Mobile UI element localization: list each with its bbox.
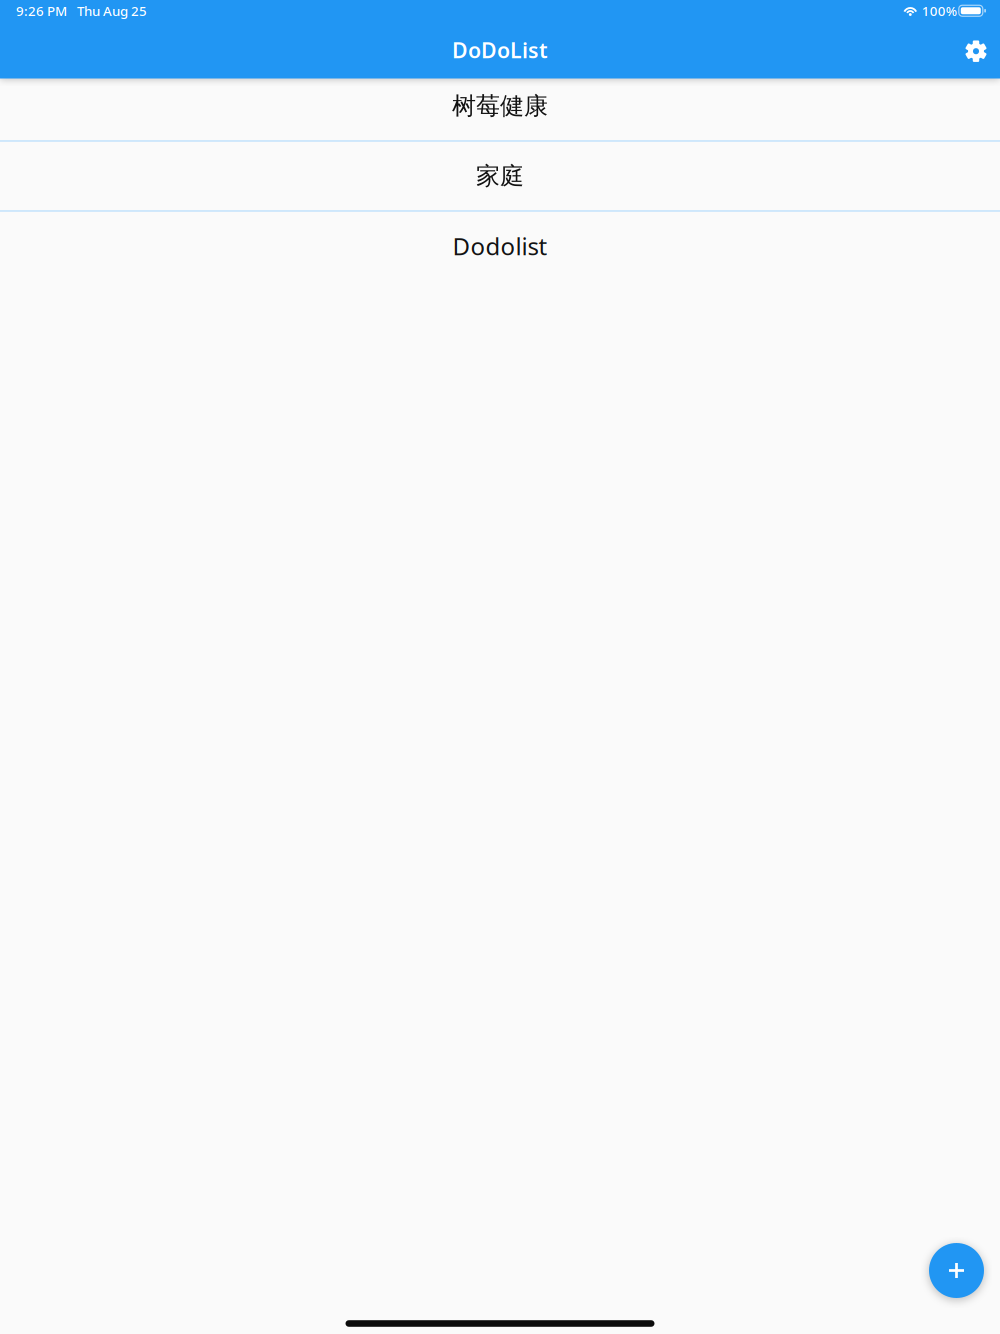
button[interactable]: Add list	[929, 1243, 984, 1298]
staticText: 家庭	[476, 161, 524, 191]
staticText: Dodolist	[452, 230, 547, 262]
button[interactable]: Settings	[954, 28, 998, 72]
staticText: Thu Aug 25	[77, 2, 147, 20]
button[interactable]: Dodolist	[0, 212, 1000, 282]
button[interactable]: 家庭	[0, 142, 1000, 212]
button[interactable]: 树莓健康	[0, 72, 1000, 142]
staticText: 100%	[922, 2, 957, 20]
staticText: 树莓健康	[452, 91, 548, 121]
staticText: 9:26 PM	[16, 2, 67, 20]
staticText: DoDoList	[452, 36, 548, 64]
